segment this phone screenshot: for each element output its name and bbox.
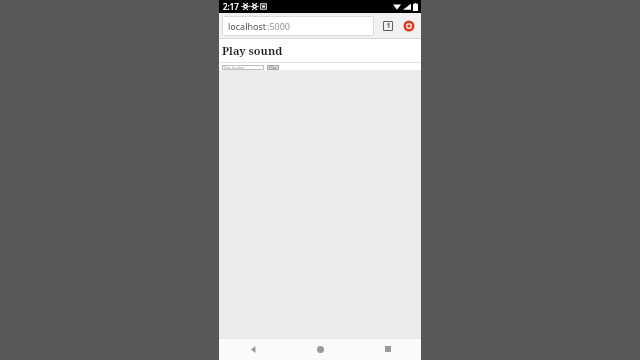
- button[interactable]: Tabs: [379, 17, 397, 35]
- button[interactable]: Text to play: [222, 65, 264, 70]
- button[interactable]: Back: [219, 338, 287, 360]
- staticText: Text to play: [223, 65, 245, 70]
- staticText: Play: [269, 65, 277, 70]
- button[interactable]: Recording: [400, 17, 418, 35]
- staticText: localhost: [228, 20, 267, 32]
- button[interactable]: Play: [267, 65, 279, 70]
- button[interactable]: Home: [287, 338, 354, 360]
- staticText: 2:17: [223, 1, 239, 12]
- staticText: 1: [386, 21, 391, 31]
- button[interactable]: localhost: [222, 16, 374, 36]
- button[interactable]: Recent apps: [354, 338, 421, 360]
- staticText: :5000: [267, 20, 291, 32]
- staticText: Play sound: [222, 43, 283, 58]
